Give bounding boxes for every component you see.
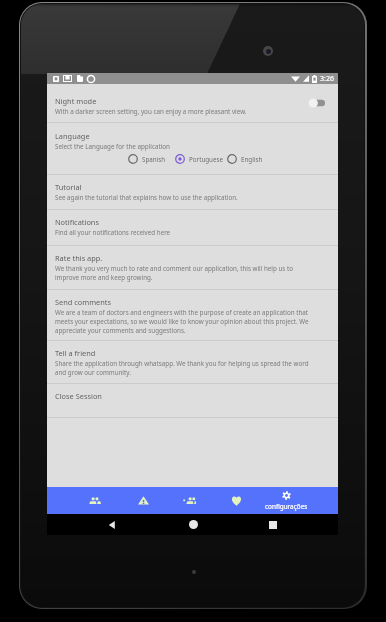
- button[interactable]: Tell a friend: [47, 341, 338, 384]
- button[interactable]: Favorites: [213, 487, 260, 514]
- staticText: Find all your notifications received her…: [55, 228, 171, 237]
- staticText: Send comments: [55, 297, 112, 307]
- staticText: 3:26: [320, 74, 334, 84]
- staticText: With a darker screen setting, you can en…: [55, 107, 247, 116]
- staticText: Tell a friend: [55, 348, 96, 358]
- staticText: Rate this app.: [55, 253, 103, 263]
- staticText: Tutorial: [55, 182, 82, 192]
- button[interactable]: Rate this app.: [47, 246, 338, 290]
- button[interactable]: configurações: [263, 487, 309, 514]
- staticText: Notifications: [55, 217, 99, 227]
- staticText: We are a team of doctors and engineers w…: [55, 308, 315, 335]
- button[interactable]: Night mode toggle: [308, 98, 325, 108]
- button[interactable]: Send comments: [47, 290, 338, 341]
- button[interactable]: Portuguese: [175, 153, 224, 165]
- button[interactable]: Night mode: [47, 84, 338, 123]
- button[interactable]: Language: [47, 123, 338, 175]
- staticText: Share the application through whatsapp. …: [55, 359, 315, 377]
- button[interactable]: Groups: [71, 487, 118, 514]
- staticText: We thank you very much to rate and comme…: [55, 264, 315, 282]
- button[interactable]: Add group: [166, 487, 213, 514]
- staticText: Select the Language for the application: [55, 142, 170, 151]
- button[interactable]: Home: [178, 514, 208, 535]
- staticText: See again the tutorial that explains how…: [55, 193, 238, 202]
- staticText: configurações: [265, 502, 308, 511]
- button[interactable]: English: [227, 153, 263, 165]
- button[interactable]: Notifications: [47, 210, 338, 246]
- staticText: Portuguese: [189, 155, 224, 164]
- staticText: English: [241, 155, 263, 164]
- button[interactable]: Tutorial: [47, 175, 338, 210]
- button[interactable]: Back: [97, 514, 127, 535]
- button[interactable]: Spanish: [128, 153, 166, 165]
- button[interactable]: Recents: [258, 514, 288, 535]
- staticText: Spanish: [142, 155, 166, 164]
- button[interactable]: Alerts: [120, 487, 167, 514]
- button[interactable]: Close Session: [47, 384, 338, 418]
- staticText: Close Session: [55, 391, 102, 401]
- staticText: Language: [55, 131, 90, 141]
- staticText: Night mode: [55, 96, 97, 106]
